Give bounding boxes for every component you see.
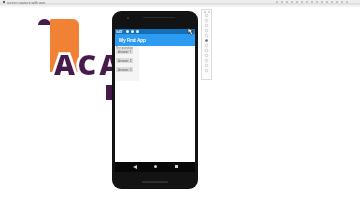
button[interactable]: Volume down	[201, 23, 212, 28]
button[interactable]: Answer 2	[116, 58, 133, 63]
button[interactable]: Answer 1	[116, 49, 133, 54]
staticText: ACAD	[54, 44, 148, 83]
staticText: Answer 2	[118, 59, 132, 63]
button[interactable]: Volume up	[201, 18, 212, 23]
button[interactable]: Zoom	[201, 43, 212, 48]
staticText: My First App	[119, 37, 146, 43]
button[interactable]: Rotate left	[201, 28, 212, 33]
button[interactable]: Rotate right	[201, 33, 212, 38]
button[interactable]: Home	[201, 53, 212, 58]
button[interactable]: Window control	[203, 10, 206, 13]
other: Back	[133, 165, 137, 169]
button[interactable]: Window control	[207, 10, 210, 13]
button[interactable]: More	[201, 63, 212, 68]
other: Home	[154, 165, 157, 168]
staticText: 3:47	[116, 30, 123, 34]
staticText: The question	[116, 46, 134, 49]
staticText: ACAD	[54, 44, 148, 83]
button[interactable]: Back	[201, 48, 212, 53]
button[interactable]: Power	[201, 13, 212, 18]
button[interactable]: Settings	[201, 68, 212, 73]
button[interactable]: Screenshot	[201, 38, 212, 43]
staticText: Answer 3	[118, 68, 132, 72]
staticText: screen capture with pen	[7, 0, 46, 4]
button[interactable]: Overview	[201, 58, 212, 63]
staticText: Answer 1	[118, 50, 132, 54]
button[interactable]: Answer 3	[116, 67, 133, 72]
